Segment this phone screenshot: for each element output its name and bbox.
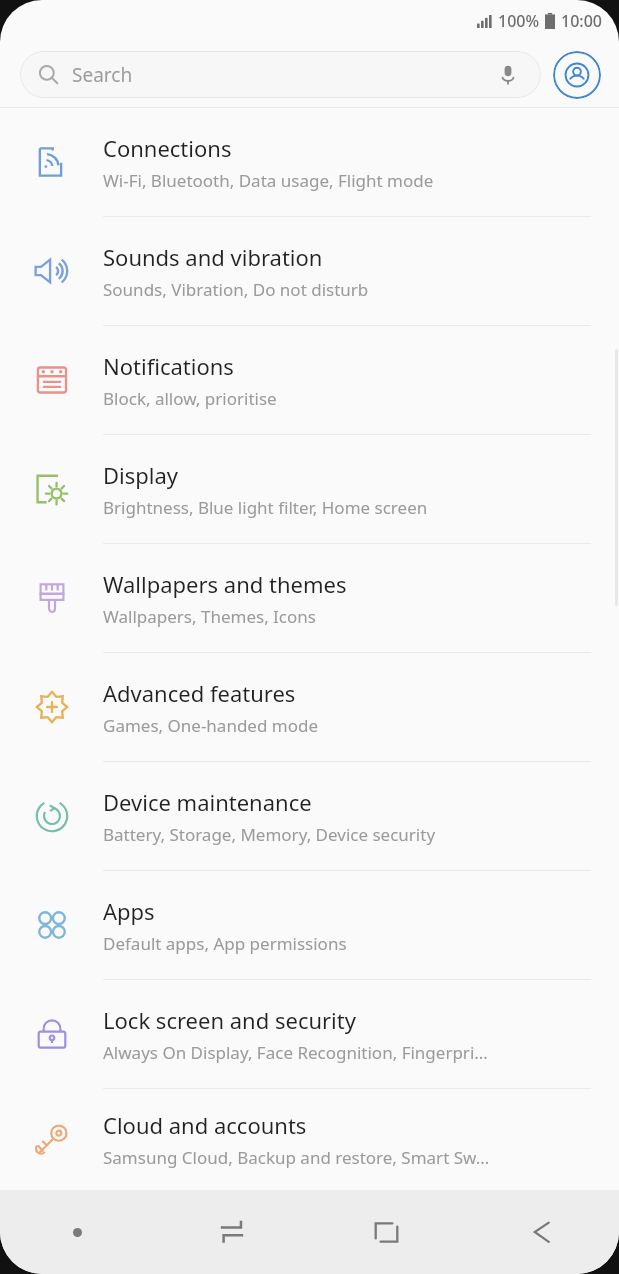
staticText: Advanced features: [103, 678, 296, 708]
staticText: Block, allow, prioritise: [103, 387, 277, 410]
staticText: Apps: [103, 896, 155, 926]
staticText: Games, One-handed mode: [103, 714, 319, 737]
button[interactable]: Display: [0, 435, 619, 543]
staticText: Brightness, Blue light filter, Home scre…: [103, 496, 428, 519]
button[interactable]: Advanced features: [0, 653, 619, 761]
staticText: Device maintenance: [103, 787, 312, 817]
button[interactable]: Cloud and accounts: [0, 1089, 619, 1190]
button[interactable]: Wallpapers and themes: [0, 544, 619, 652]
button[interactable]: Back: [464, 1190, 619, 1274]
staticText: Samsung Cloud, Backup and restore, Smart…: [103, 1146, 490, 1169]
staticText: Notifications: [103, 351, 234, 381]
staticText: 10:00: [561, 10, 602, 32]
staticText: Wallpapers, Themes, Icons: [103, 605, 316, 628]
staticText: Default apps, App permissions: [103, 932, 347, 955]
button[interactable]: Home: [309, 1190, 464, 1274]
staticText: Wi-Fi, Bluetooth, Data usage, Flight mod…: [103, 169, 434, 192]
button[interactable]: Account: [553, 51, 601, 99]
staticText: Always On Display, Face Recognition, Fin…: [103, 1041, 488, 1064]
staticText: Cloud and accounts: [103, 1110, 307, 1140]
button[interactable]: Connections: [0, 108, 619, 216]
staticText: Search: [72, 62, 133, 88]
staticText: Battery, Storage, Memory, Device securit…: [103, 823, 436, 846]
staticText: Lock screen and security: [103, 1005, 356, 1035]
staticText: Display: [103, 460, 179, 490]
button[interactable]: Apps: [0, 871, 619, 979]
button[interactable]: Recent apps: [154, 1190, 309, 1274]
button[interactable]: Menu indicator: [0, 1190, 154, 1274]
button[interactable]: Device maintenance: [0, 762, 619, 870]
button[interactable]: Sounds and vibration: [0, 217, 619, 325]
button[interactable]: Voice search: [493, 60, 523, 90]
staticText: Sounds, Vibration, Do not disturb: [103, 278, 369, 301]
staticText: 100%: [498, 10, 540, 32]
staticText: Connections: [103, 133, 232, 163]
button[interactable]: Search: [20, 51, 541, 98]
staticText: Wallpapers and themes: [103, 569, 347, 599]
staticText: Sounds and vibration: [103, 242, 323, 272]
button[interactable]: Notifications: [0, 326, 619, 434]
button[interactable]: Lock screen and security: [0, 980, 619, 1088]
